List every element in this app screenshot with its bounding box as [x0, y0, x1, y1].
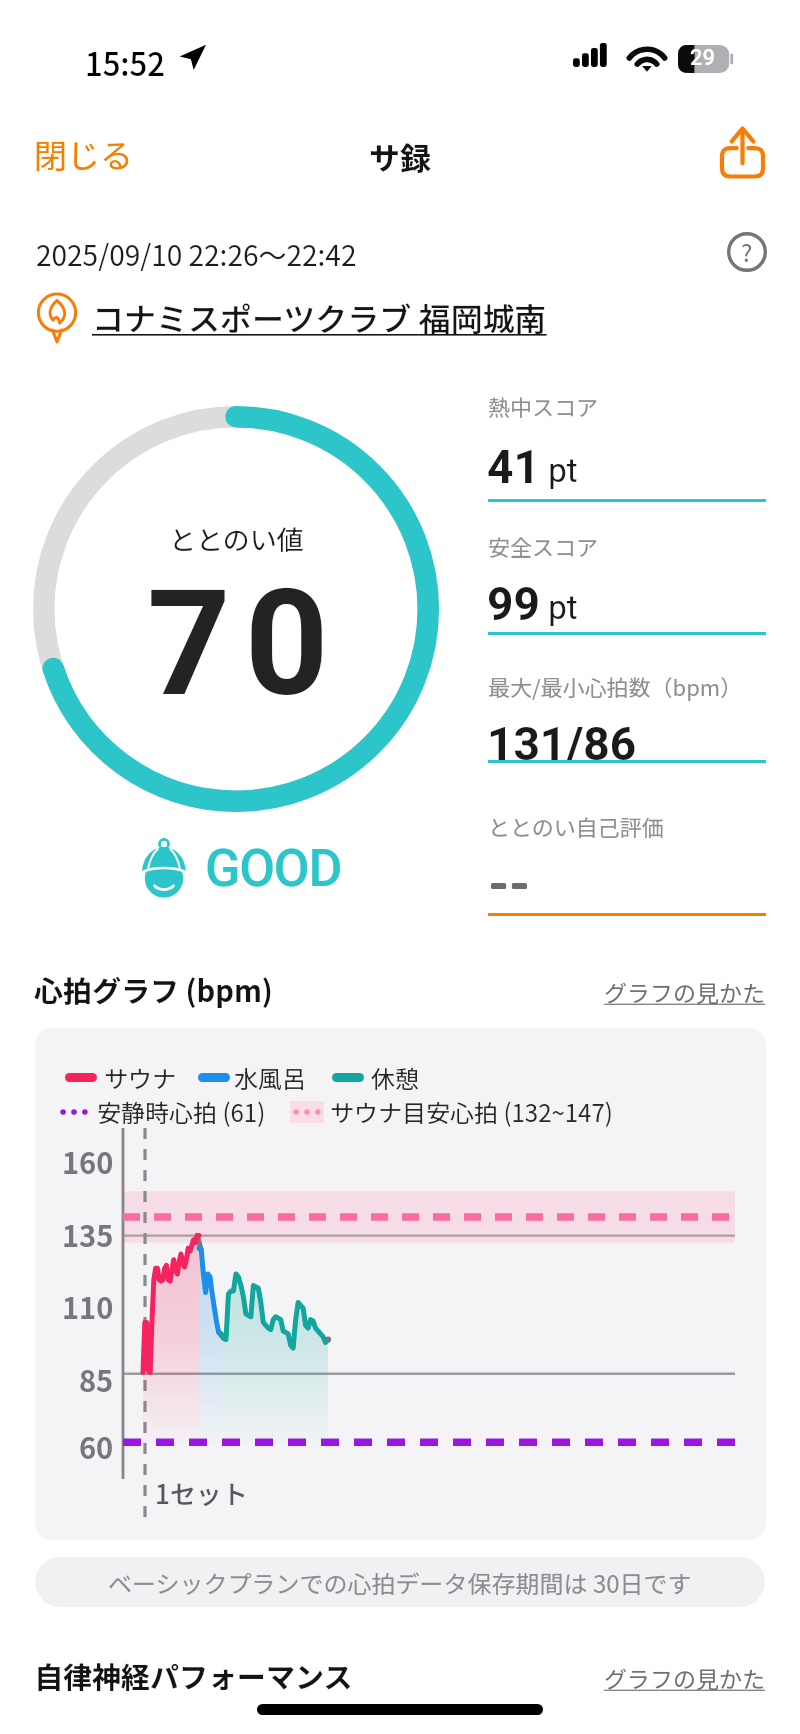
button[interactable]: Share [706, 115, 778, 187]
staticText: 99 [487, 577, 540, 631]
staticText: 15:52 [85, 40, 165, 85]
button[interactable]: Help [724, 229, 770, 275]
staticText: ととのい自己評価 [488, 810, 664, 842]
staticText: 休憩 [371, 1060, 419, 1095]
staticText: 2025/09/10 22:26〜22:42 [36, 234, 357, 275]
staticText: 110 [62, 1285, 114, 1325]
button[interactable]: 閉じる [18, 118, 149, 190]
staticText: ととのい値 [169, 519, 304, 558]
staticText: 29 [690, 45, 716, 71]
staticText: 閉じる [34, 130, 133, 178]
button[interactable]: グラフの見かた [600, 972, 769, 1011]
staticText: サ録 [369, 134, 431, 179]
staticText: 熱中スコア [488, 390, 599, 422]
button[interactable]: グラフの見かた [600, 1658, 769, 1697]
staticText: 安全スコア [488, 530, 599, 562]
staticText: 安静時心拍 (61) [97, 1094, 266, 1129]
staticText: 1セット [155, 1474, 248, 1512]
staticText: ベーシックプランでの心拍データ保存期間は 30日です [108, 1565, 692, 1600]
staticText: サウナ目安心拍 (132~147) [330, 1094, 613, 1129]
staticText: 131/86 [487, 717, 637, 771]
staticText: 160 [62, 1140, 114, 1180]
button[interactable]: コナミスポーツクラブ 福岡城南 [24, 286, 559, 348]
staticText: ? [741, 234, 753, 269]
staticText: 水風呂 [234, 1060, 306, 1095]
staticText: サウナ [104, 1060, 176, 1095]
staticText: グラフの見かた [604, 1661, 765, 1694]
staticText: 60 [79, 1425, 114, 1465]
staticText: pt [540, 588, 578, 627]
staticText: GOOD [205, 838, 342, 899]
staticText: コナミスポーツクラブ 福岡城南 [92, 294, 547, 340]
staticText: 最大/最小心拍数（bpm） [488, 670, 743, 702]
staticText: グラフの見かた [604, 975, 765, 1008]
staticText: 41 [487, 440, 540, 494]
staticText: pt [540, 451, 578, 490]
staticText: 心拍グラフ (bpm) [34, 968, 273, 1010]
staticText: 135 [62, 1213, 114, 1253]
staticText: 自律神経パフォーマンス [34, 1654, 353, 1696]
staticText: 70 [147, 559, 343, 730]
staticText: 85 [79, 1358, 114, 1398]
